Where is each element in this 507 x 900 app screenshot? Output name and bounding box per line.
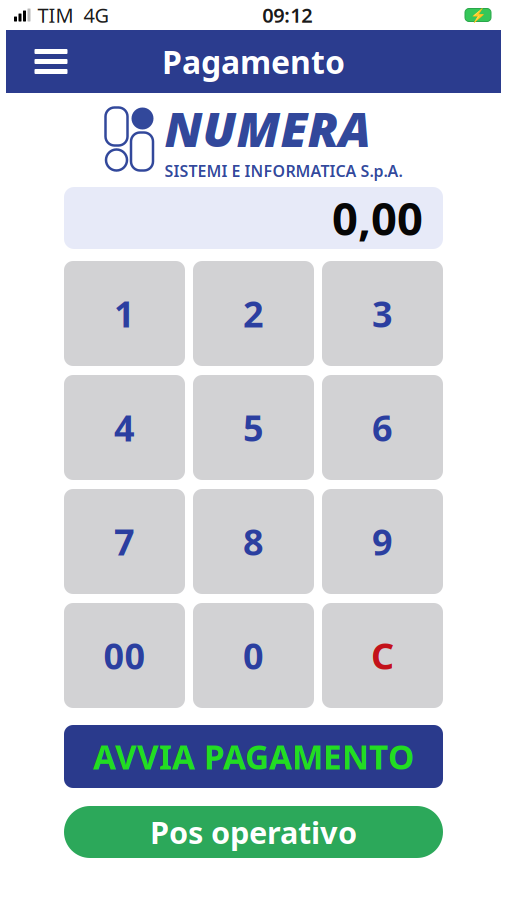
staticText: SISTEMI E INFORMATICA S.p.A.	[164, 160, 402, 181]
staticText: ⚡	[469, 7, 486, 23]
staticText: 09:12	[262, 2, 312, 28]
button[interactable]: 4	[64, 375, 185, 480]
staticText: C	[371, 632, 394, 679]
staticText: 5	[243, 404, 264, 451]
staticText: 4G	[83, 2, 109, 28]
button[interactable]: 0	[193, 603, 314, 708]
staticText: 6	[372, 404, 393, 451]
staticText: 0	[243, 632, 264, 679]
staticText: TIM	[37, 2, 73, 28]
button[interactable]: 3	[322, 261, 443, 366]
staticText: NUMERA	[164, 96, 370, 160]
button[interactable]: AVVIA PAGAMENTO	[64, 725, 443, 788]
button[interactable]: Pos operativo	[64, 806, 443, 858]
staticText: 7	[114, 518, 135, 565]
staticText: Pagamento	[162, 40, 345, 83]
staticText: 3	[372, 290, 393, 337]
staticText: 9	[372, 518, 393, 565]
staticText: 1	[114, 290, 135, 337]
button[interactable]: 00	[64, 603, 185, 708]
staticText: 8	[243, 518, 264, 565]
button[interactable]: 7	[64, 489, 185, 594]
button[interactable]: 6	[322, 375, 443, 480]
staticText: 4	[114, 404, 135, 451]
button[interactable]: 2	[193, 261, 314, 366]
button[interactable]: C	[322, 603, 443, 708]
staticText: 0,00	[332, 188, 423, 248]
button[interactable]: 5	[193, 375, 314, 480]
button[interactable]: Menu	[20, 30, 82, 92]
staticText: 00	[103, 632, 145, 679]
staticText: Pos operativo	[150, 812, 357, 852]
button[interactable]: 1	[64, 261, 185, 366]
staticText: AVVIA PAGAMENTO	[93, 734, 414, 779]
button[interactable]: 8	[193, 489, 314, 594]
staticText: 2	[243, 290, 264, 337]
button[interactable]: 9	[322, 489, 443, 594]
